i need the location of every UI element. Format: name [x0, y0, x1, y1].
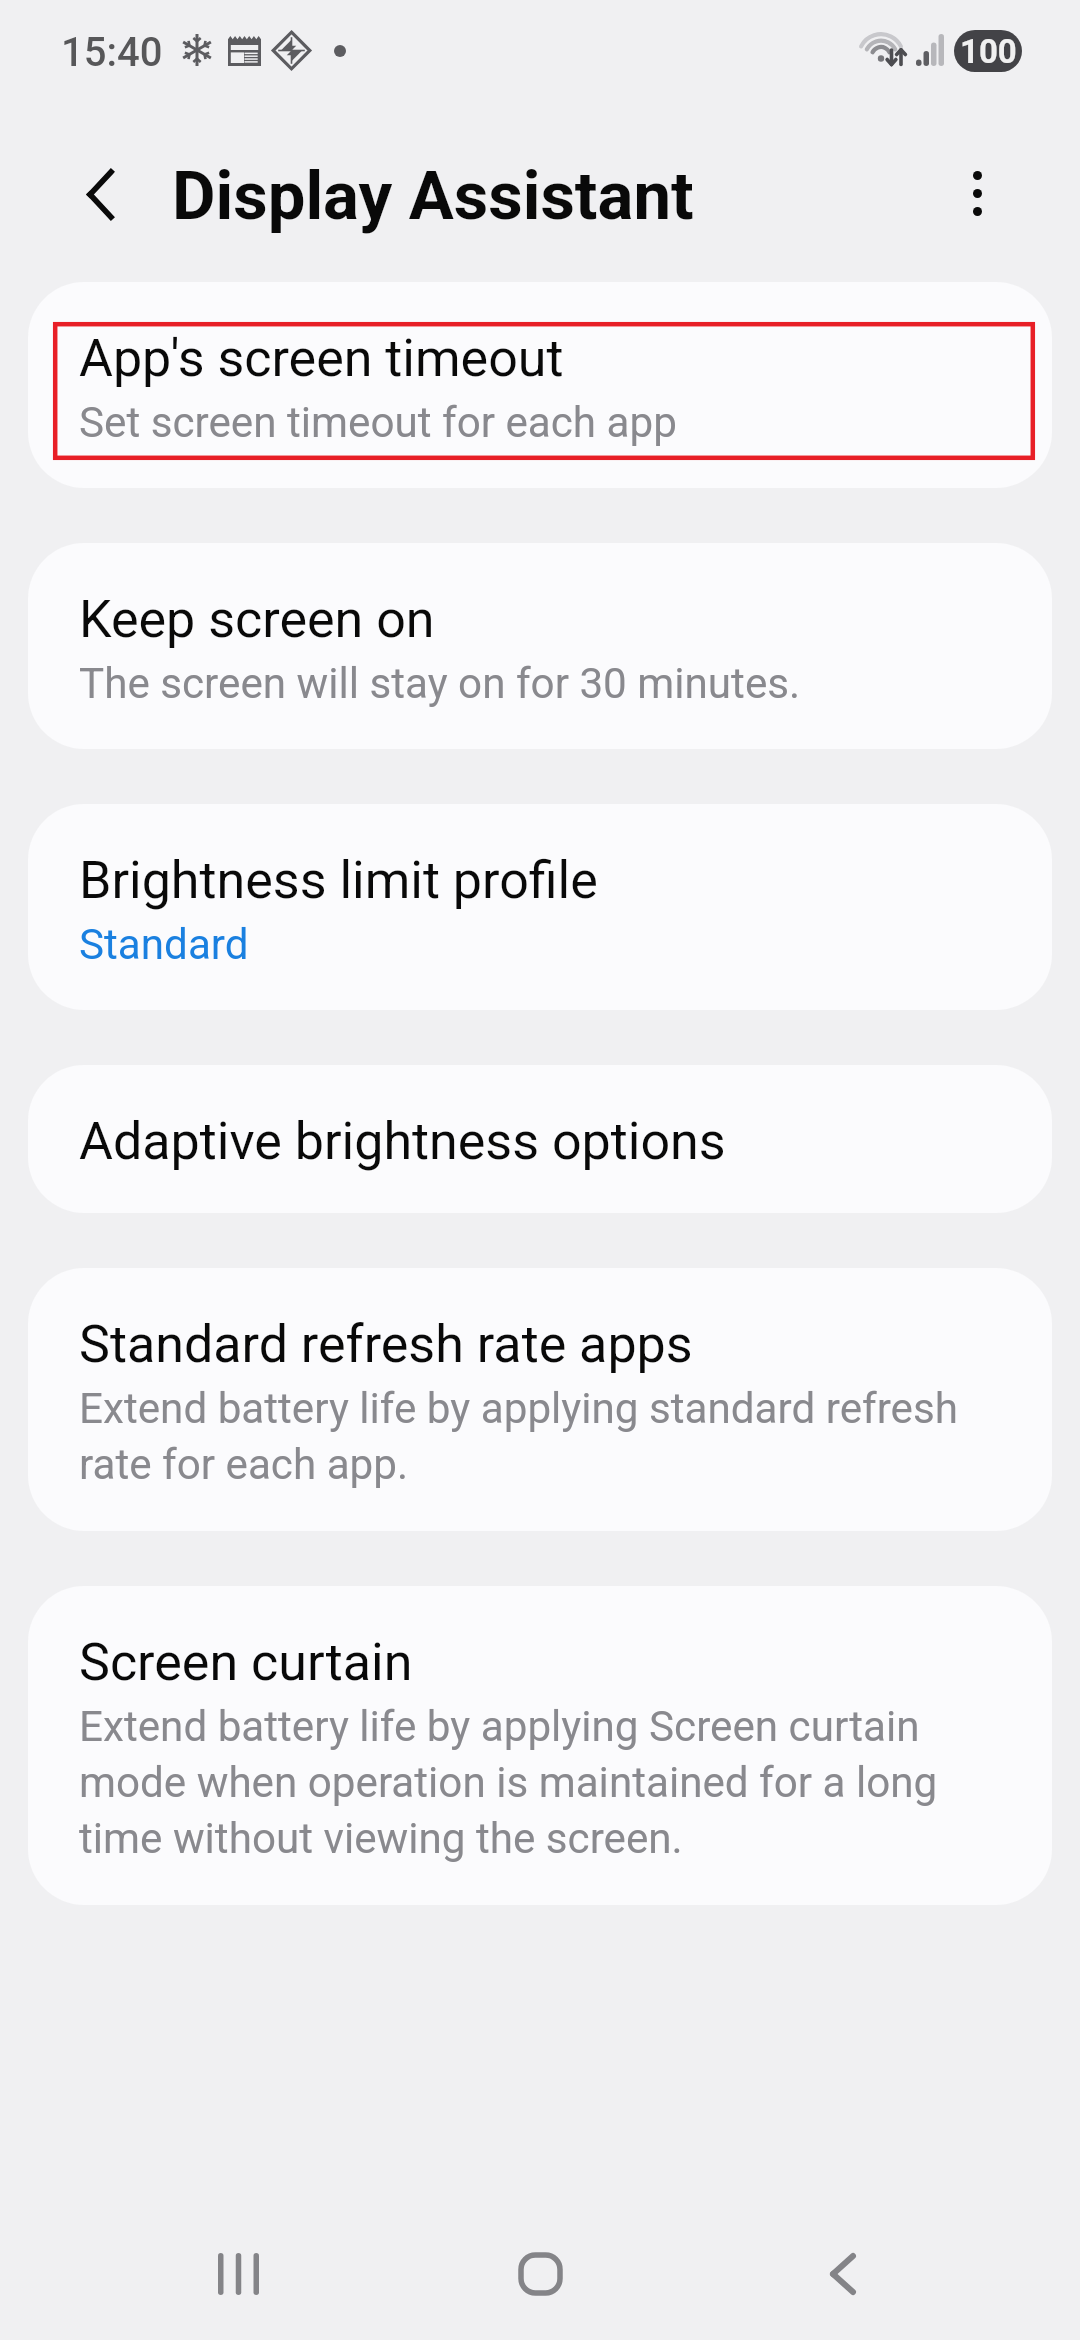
button[interactable]: Standard refresh rate apps — [28, 1268, 1052, 1531]
staticText: Standard refresh rate apps — [79, 1314, 693, 1375]
button[interactable]: More options — [922, 138, 1032, 248]
button[interactable]: Screen curtain — [28, 1586, 1052, 1905]
button[interactable]: Keep screen on — [28, 543, 1052, 749]
staticText: Adaptive brightness options — [79, 1111, 726, 1172]
button[interactable]: Back — [768, 2199, 918, 2340]
staticText: App's screen timeout — [79, 328, 564, 389]
button[interactable]: Brightness limit profile — [28, 804, 1052, 1010]
staticText: Extend battery life by applying Screen c… — [79, 1702, 1000, 1864]
button[interactable]: Recent apps — [163, 2199, 313, 2340]
staticText: Extend battery life by applying standard… — [79, 1384, 1000, 1490]
staticText: Keep screen on — [79, 589, 435, 650]
staticText: 100 — [960, 32, 1017, 71]
staticText: Standard — [79, 920, 249, 969]
staticText: Brightness limit profile — [79, 850, 598, 911]
button[interactable]: Back — [45, 139, 155, 249]
button[interactable]: App's screen timeout — [28, 282, 1052, 488]
staticText: The screen will stay on for 30 minutes. — [79, 659, 801, 708]
button[interactable]: Home — [465, 2199, 615, 2340]
staticText: Set screen timeout for each app — [79, 398, 677, 447]
staticText: Screen curtain — [79, 1632, 413, 1693]
staticText: 15:40 — [61, 29, 163, 76]
staticText: Display Assistant — [172, 157, 694, 236]
button[interactable]: Adaptive brightness options — [28, 1065, 1052, 1213]
